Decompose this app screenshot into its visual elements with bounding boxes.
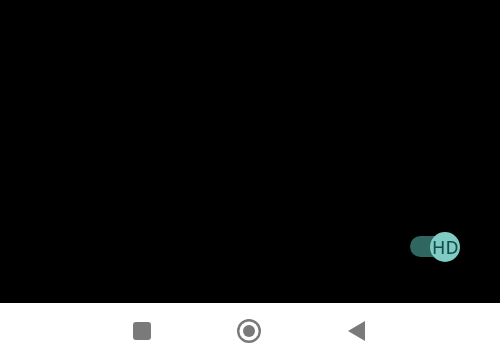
button[interactable]: Home [228, 310, 269, 351]
button[interactable]: Toggle HD [410, 231, 460, 262]
button[interactable]: Recent apps [121, 310, 162, 351]
button[interactable]: Back [336, 310, 377, 351]
staticText: HD [432, 235, 459, 260]
